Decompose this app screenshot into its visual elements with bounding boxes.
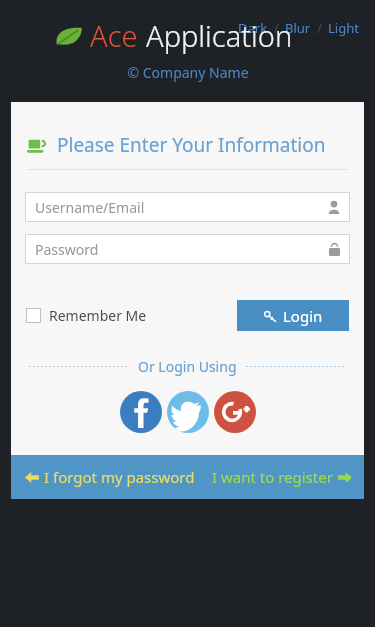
staticText: Application [146,16,293,55]
button[interactable]: Remember Me [26,306,147,325]
button[interactable]: Username/Email [25,192,350,222]
staticText: Light [328,19,359,37]
staticText: Dark [238,19,268,37]
staticText: / [317,19,322,37]
button[interactable]: Facebook [120,391,162,433]
staticText: Please Enter Your Information [57,132,326,158]
button[interactable]: Light [326,19,361,37]
staticText: Or Login Using [138,357,237,376]
staticText: I want to register [212,467,333,487]
staticText: Blur [285,19,311,37]
staticText: © Company Name [127,63,249,82]
button[interactable]: Login [237,300,349,331]
staticText: Ace [90,16,138,55]
staticText: Remember Me [49,306,147,325]
button[interactable]: Dark [236,19,270,37]
staticText: Username/Email [35,198,145,217]
button[interactable]: Google Plus [214,391,256,433]
staticText: / [274,19,279,37]
staticText: I forgot my password [44,467,195,487]
staticText: Password [35,240,99,259]
staticText: Login [283,306,323,326]
button[interactable]: I forgot my password [11,467,195,487]
button[interactable]: Password [25,234,350,264]
button[interactable]: Twitter [167,391,209,433]
button[interactable]: I want to register [212,467,364,487]
button[interactable]: Blur [283,19,313,37]
